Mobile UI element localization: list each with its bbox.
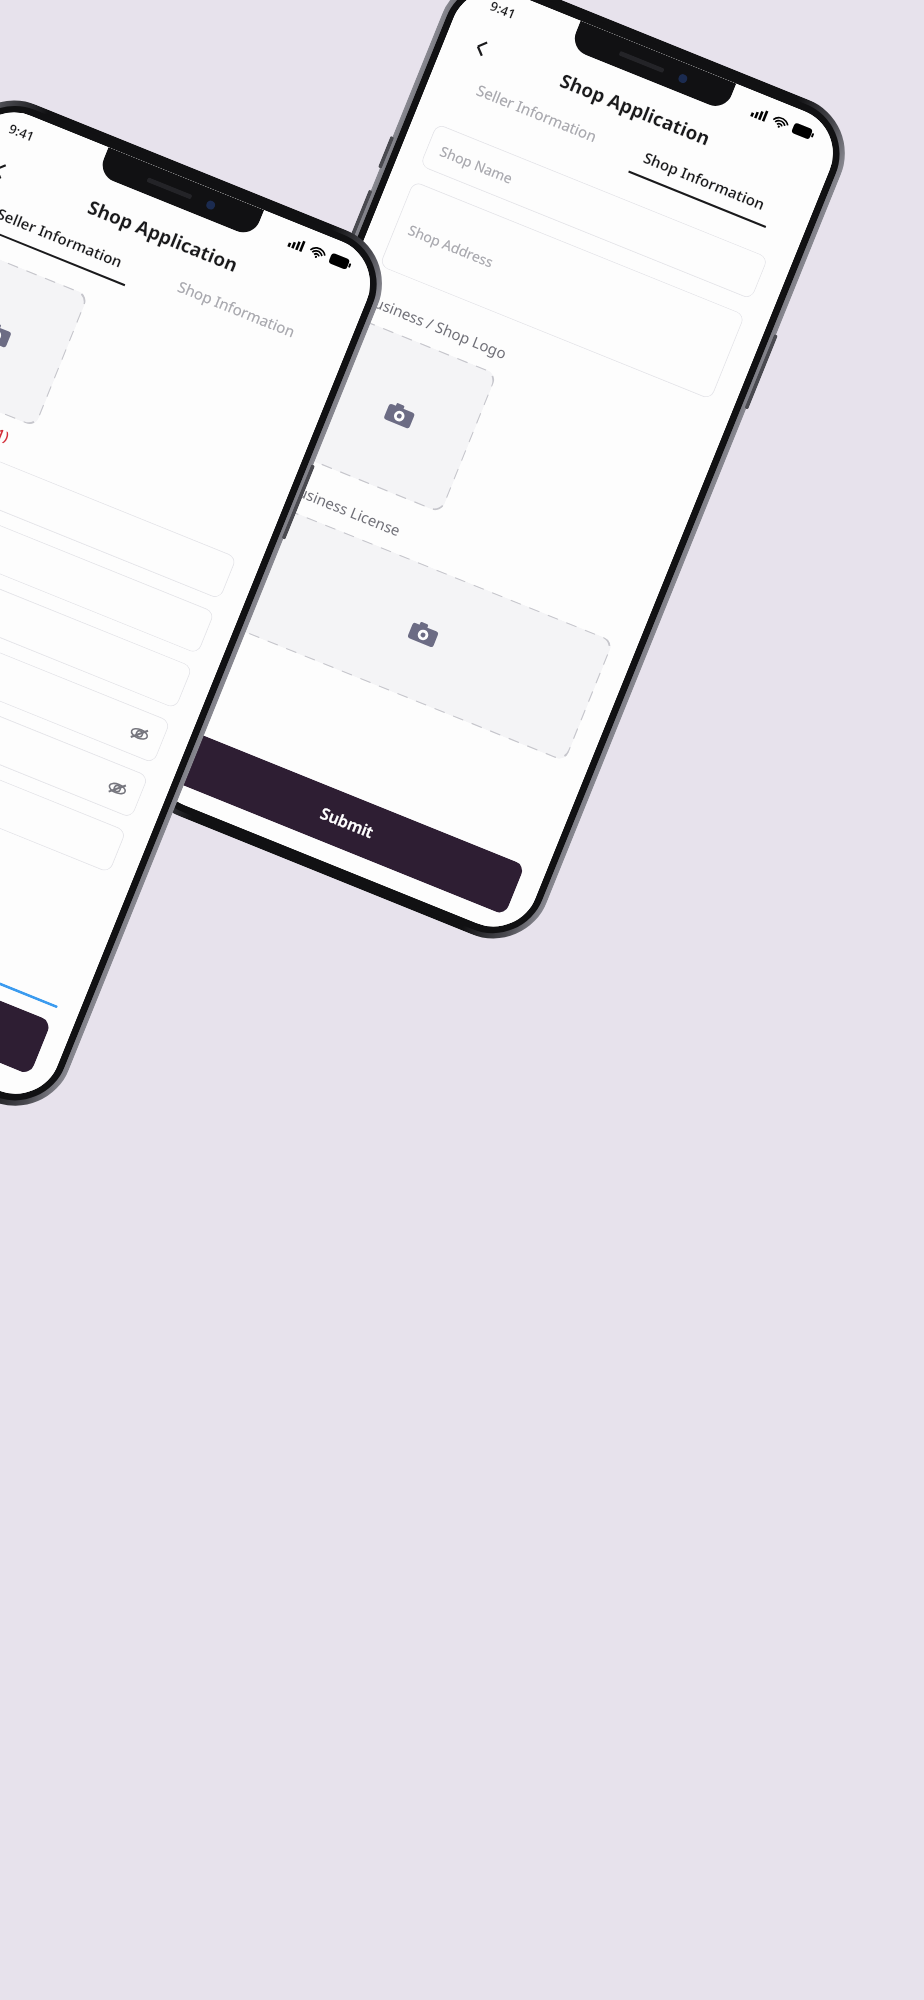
button[interactable]: Show password: [0, 613, 171, 764]
button[interactable]: Show password: [103, 774, 131, 802]
button[interactable]: Shop Name: [419, 123, 769, 300]
button[interactable]: Back: [0, 143, 27, 197]
staticText: Seller Information: [474, 80, 600, 146]
button[interactable]: Shop Address: [379, 181, 745, 400]
staticText: Shop Application: [84, 194, 242, 278]
staticText: Shop Information: [641, 147, 769, 214]
button[interactable]: Upload image: [0, 242, 88, 427]
button[interactable]: Next: [0, 878, 52, 1075]
staticText: Business / Shop Logo: [363, 288, 510, 363]
button[interactable]: Upload image: [233, 507, 613, 762]
button[interactable]: Shop Information: [140, 264, 329, 364]
button[interactable]: Submit: [169, 730, 525, 915]
button[interactable]: Seller Information: [445, 70, 624, 166]
staticText: Shop Name: [437, 141, 516, 188]
staticText: Shop Application: [556, 67, 714, 151]
button[interactable]: Password: [0, 634, 149, 819]
button[interactable]: Confirm Password: [0, 689, 127, 873]
staticText: Shop Information: [175, 276, 298, 342]
button[interactable]: First Name: [0, 415, 237, 600]
staticText: 9:41: [6, 119, 37, 146]
staticText: Submit: [317, 802, 377, 843]
button[interactable]: Email Address: [0, 525, 193, 709]
staticText: Seller Information: [0, 203, 126, 272]
button[interactable]: Seller Information: [0, 192, 152, 293]
staticText: 9:41: [488, 0, 518, 23]
button[interactable]: Show password: [125, 719, 153, 747]
staticText: Shop Address: [405, 220, 497, 272]
button[interactable]: Back: [454, 20, 509, 75]
button[interactable]: Shop Information: [612, 137, 792, 234]
staticText: Business License: [286, 477, 404, 540]
button[interactable]: Upload image: [302, 318, 497, 513]
staticText: (1:1): [0, 417, 12, 446]
